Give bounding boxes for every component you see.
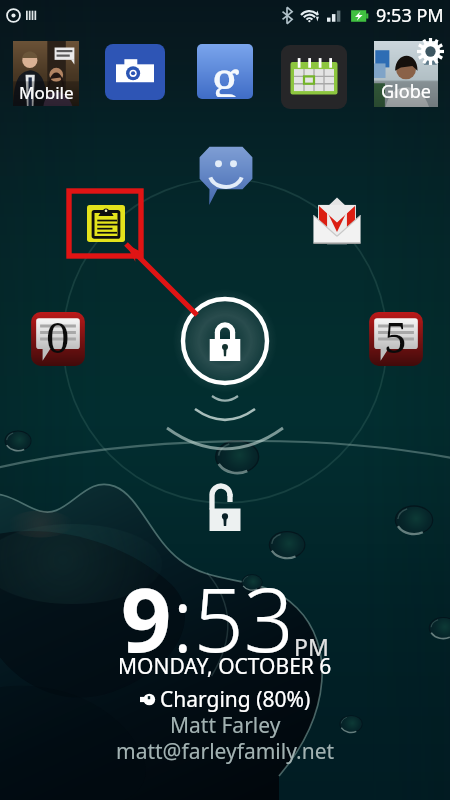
- staticText: Matt Farley: [170, 711, 281, 740]
- button[interactable]: Messages 5: [368, 311, 424, 367]
- staticText: Globe: [381, 79, 431, 104]
- button[interactable]: Globe contact: [374, 41, 438, 107]
- button[interactable]: [306, 191, 368, 249]
- button[interactable]: Mobile contact: [13, 41, 79, 106]
- staticText: g: [211, 44, 240, 97]
- button[interactable]: Calendar: [281, 45, 347, 109]
- button[interactable]: Notes: [87, 205, 125, 242]
- button[interactable]: Camera: [105, 44, 165, 100]
- button[interactable]: Messaging: [196, 143, 256, 205]
- staticText: 0: [46, 308, 70, 364]
- staticText: matt@farleyfamily.net: [116, 737, 335, 766]
- staticText: PM: [294, 631, 329, 662]
- button[interactable]: Messages 0: [30, 311, 86, 367]
- button[interactable]: Sync: [417, 38, 444, 65]
- staticText: Mobile: [19, 81, 74, 104]
- button[interactable]: Google Search: [197, 44, 253, 99]
- staticText: MONDAY, OCTOBER 6: [118, 652, 332, 681]
- staticText: Charging (80%): [160, 685, 311, 714]
- staticText: 9: [121, 558, 172, 678]
- staticText: 5: [384, 308, 408, 364]
- staticText: :53: [172, 558, 294, 678]
- button[interactable]: Unlock: [178, 294, 272, 388]
- button[interactable]: Unlock shortcut: [207, 483, 243, 533]
- staticText: 9:53 PM: [376, 3, 444, 28]
